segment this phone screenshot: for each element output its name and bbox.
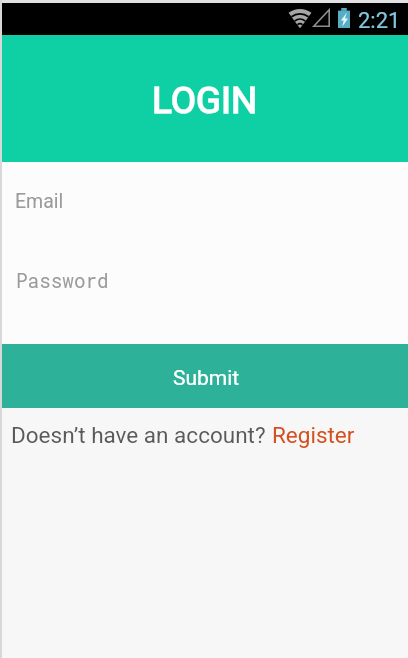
staticText: Register [272, 422, 355, 448]
staticText: Password [16, 268, 109, 293]
button[interactable]: Email [0, 190, 408, 242]
staticText: 2:21 [358, 8, 401, 34]
staticText: LOGIN [152, 79, 258, 122]
staticText: Doesn’t have an account? [11, 422, 272, 448]
other: Battery charging [338, 8, 350, 28]
staticText: Email [15, 190, 64, 213]
button[interactable]: Register [272, 422, 355, 448]
other: Wi-Fi [287, 9, 313, 28]
other: Signal [313, 9, 330, 27]
button[interactable]: Password [0, 268, 408, 320]
button[interactable]: Submit [0, 344, 408, 408]
staticText: Submit [173, 366, 240, 391]
